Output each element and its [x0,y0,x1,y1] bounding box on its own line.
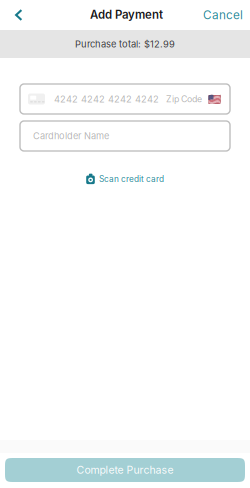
button[interactable]: Complete Purchase [5,458,245,482]
staticText: 🇺🇸 [208,93,221,105]
staticText: Complete Purchase [76,464,173,476]
staticText: Cardholder Name [33,130,109,141]
button[interactable]: Cancel [193,0,250,30]
button[interactable]: Back [0,0,34,30]
staticText: Zip Code [166,94,202,104]
button[interactable]: Scan credit card [86,168,164,190]
staticText: Scan credit card [99,174,164,184]
staticText: Cancel [203,8,243,22]
staticText: Purchase total: $12.99 [75,38,175,50]
staticText: 4242 4242 4242 4242 [54,93,159,105]
staticText: Add Payment [90,8,163,21]
